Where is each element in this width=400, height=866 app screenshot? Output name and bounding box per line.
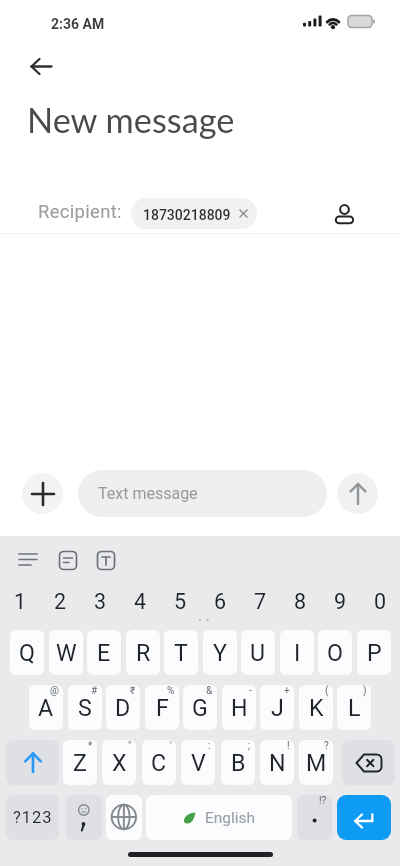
button[interactable]: G [183, 685, 217, 730]
staticText: Y [213, 639, 227, 666]
staticText: A [38, 694, 54, 721]
staticText: B [231, 749, 246, 776]
button[interactable]: 7 [240, 582, 280, 621]
button[interactable]: 5 [160, 582, 200, 621]
button[interactable]: 3 [80, 582, 120, 621]
staticText: @ [50, 685, 59, 697]
staticText: 3 [94, 589, 107, 614]
button[interactable]: English [146, 795, 292, 840]
button[interactable]: D [106, 685, 140, 730]
staticText: English [205, 809, 256, 827]
button[interactable]: X [102, 740, 136, 785]
staticText: C [151, 749, 167, 776]
staticText: ?123 [13, 808, 53, 827]
button[interactable]: S [68, 685, 102, 730]
button[interactable]: R [126, 630, 160, 675]
button[interactable] [342, 740, 395, 785]
button[interactable] [20, 50, 64, 84]
button[interactable]: A [29, 685, 63, 730]
staticText: F [156, 694, 169, 721]
button[interactable] [337, 795, 391, 840]
button[interactable]: 0 [360, 582, 400, 621]
button[interactable]: Z [63, 740, 97, 785]
staticText: K [309, 694, 324, 721]
button[interactable]: 4 [120, 582, 160, 621]
button[interactable]: Y [203, 630, 237, 675]
button[interactable]: T [164, 630, 198, 675]
button[interactable] [106, 795, 142, 840]
staticText: & [206, 685, 213, 697]
staticText: ( [325, 685, 329, 697]
staticText: !? [319, 795, 327, 807]
button[interactable]: Text message [78, 470, 327, 517]
staticText: H [231, 694, 248, 721]
button[interactable]: 2 [40, 582, 80, 621]
staticText: 2:36 AM [51, 16, 105, 32]
button[interactable]: N [260, 740, 294, 785]
button[interactable]: E [87, 630, 121, 675]
button[interactable]: M [299, 740, 333, 785]
staticText: * [88, 740, 93, 752]
button[interactable]: !? [297, 795, 332, 840]
staticText: ₹ [130, 685, 136, 697]
button[interactable]: Q [10, 630, 44, 675]
button[interactable]: W [49, 630, 83, 675]
staticText: J [271, 694, 284, 721]
staticText: Recipient: [38, 201, 122, 223]
staticText: X [112, 749, 127, 776]
staticText: 6 [214, 589, 227, 614]
staticText: P [367, 639, 382, 666]
staticText: % [167, 685, 175, 697]
button[interactable]: I [280, 630, 314, 675]
staticText: - [249, 685, 252, 697]
button[interactable]: ?123 [6, 795, 59, 840]
button[interactable]: O [318, 630, 352, 675]
button[interactable] [22, 473, 63, 514]
button[interactable]: 8 [280, 582, 320, 621]
button[interactable]: V [181, 740, 215, 785]
staticText: 2 [54, 589, 67, 614]
button[interactable] [66, 795, 102, 840]
button[interactable]: L [337, 685, 371, 730]
button[interactable]: F [145, 685, 179, 730]
staticText: " [128, 740, 132, 752]
button[interactable]: H [222, 685, 256, 730]
staticText: G [192, 694, 208, 721]
button[interactable]: B [221, 740, 255, 785]
staticText: T [174, 639, 188, 666]
button[interactable]: P [357, 630, 391, 675]
staticText: 5 [174, 589, 187, 614]
staticText: # [91, 685, 98, 697]
button[interactable]: 18730218809 [131, 198, 257, 229]
button[interactable] [6, 740, 59, 785]
staticText: S [78, 694, 92, 721]
staticText: + [284, 685, 290, 697]
staticText: L [348, 694, 361, 721]
button[interactable] [330, 196, 364, 230]
button[interactable]: U [241, 630, 275, 675]
staticText: 9 [334, 589, 347, 614]
staticText: I [294, 639, 301, 666]
staticText: 7 [254, 589, 267, 614]
staticText: D [115, 694, 131, 721]
staticText: N [269, 749, 286, 776]
staticText: ! [287, 740, 290, 752]
staticText: Text message [98, 484, 198, 503]
staticText: V [191, 749, 206, 776]
staticText: R [136, 639, 151, 666]
button[interactable]: 6 [200, 582, 240, 621]
staticText: E [97, 639, 111, 666]
staticText: 4 [134, 589, 147, 614]
staticText: M [306, 749, 327, 776]
button[interactable]: 1 [0, 582, 40, 621]
button[interactable]: K [299, 685, 333, 730]
button[interactable]: 9 [320, 582, 360, 621]
button[interactable]: J [260, 685, 294, 730]
staticText: ' [170, 740, 172, 752]
staticText: Z [73, 749, 87, 776]
button[interactable] [337, 473, 378, 514]
staticText: Q [19, 639, 35, 666]
staticText: : [208, 740, 211, 752]
button[interactable]: C [142, 740, 176, 785]
staticText: ) [363, 685, 367, 697]
